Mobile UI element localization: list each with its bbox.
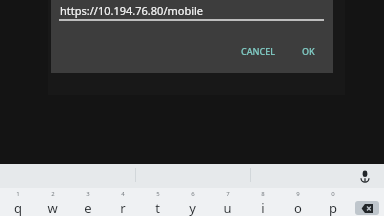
- button[interactable]: 2: [35, 188, 70, 216]
- button[interactable]: 9: [280, 188, 315, 216]
- staticText: q: [14, 199, 22, 216]
- button[interactable]: 7: [210, 188, 245, 216]
- staticText: r: [120, 199, 126, 216]
- button[interactable]: Backspace: [350, 188, 384, 216]
- staticText: 1: [16, 190, 20, 198]
- button[interactable]: OK: [294, 41, 323, 61]
- staticText: 6: [191, 190, 195, 198]
- staticText: w: [47, 199, 58, 216]
- staticText: 4: [121, 190, 125, 198]
- staticText: 8: [261, 190, 265, 198]
- staticText: u: [223, 199, 232, 216]
- button[interactable]: Voice input: [356, 167, 374, 185]
- button[interactable]: 4: [105, 188, 140, 216]
- staticText: OK: [302, 45, 315, 57]
- staticText: 3: [86, 190, 90, 198]
- button[interactable]: 5: [140, 188, 175, 216]
- staticText: CANCEL: [241, 45, 276, 57]
- staticText: 7: [226, 190, 230, 198]
- button[interactable]: 6: [175, 188, 210, 216]
- staticText: o: [294, 199, 302, 216]
- staticText: 9: [296, 190, 300, 198]
- staticText: t: [155, 199, 160, 216]
- button[interactable]: CANCEL: [233, 41, 284, 61]
- staticText: 2: [51, 190, 55, 198]
- staticText: https://10.194.76.80/mobile: [60, 3, 204, 18]
- staticText: 5: [156, 190, 160, 198]
- button[interactable]: 8: [245, 188, 280, 216]
- staticText: e: [84, 199, 92, 216]
- button[interactable]: 0: [315, 188, 350, 216]
- staticText: y: [189, 199, 196, 216]
- staticText: 0: [331, 190, 335, 198]
- staticText: p: [329, 199, 337, 216]
- button[interactable]: 3: [70, 188, 105, 216]
- staticText: i: [261, 199, 265, 216]
- button[interactable]: 1: [0, 188, 35, 216]
